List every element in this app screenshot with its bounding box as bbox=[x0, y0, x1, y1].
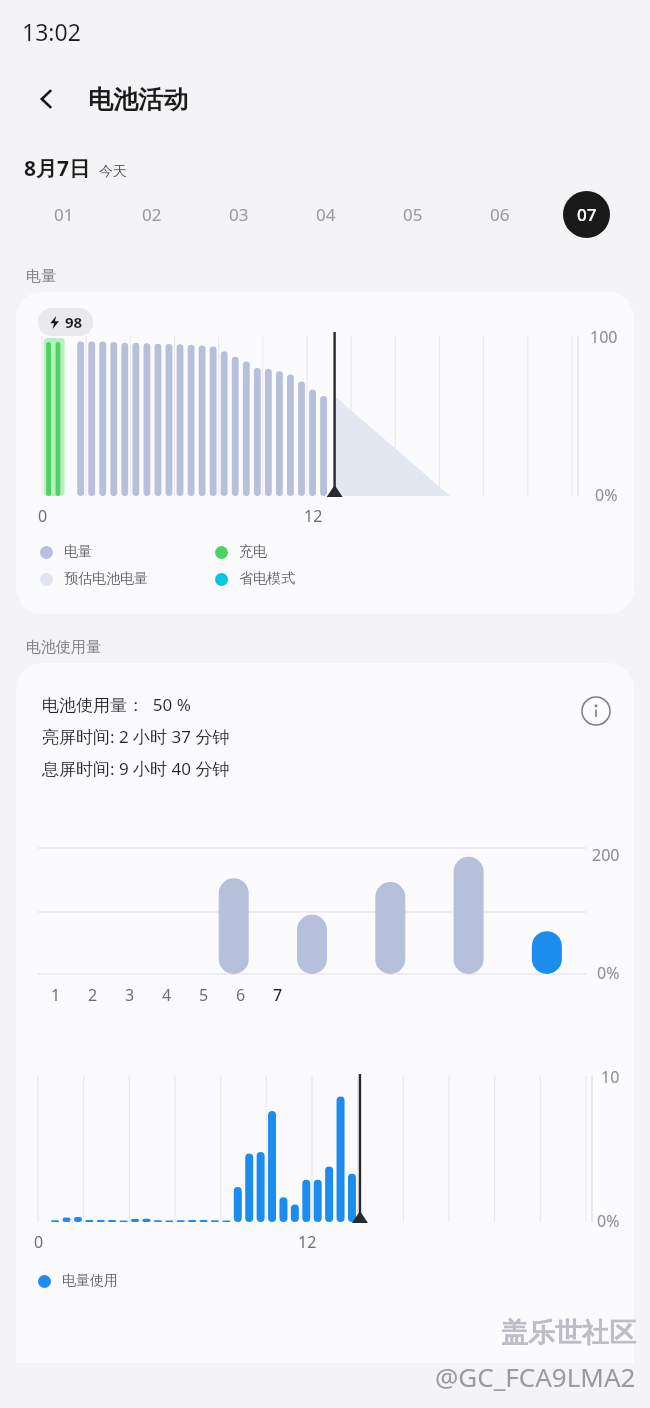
staticText: 8月7日 bbox=[24, 154, 91, 183]
staticText: 13:02 bbox=[22, 16, 81, 47]
staticText: 03 bbox=[229, 203, 249, 226]
staticText: 电量 bbox=[26, 267, 56, 286]
staticText: 06 bbox=[490, 203, 510, 226]
staticText: 200 bbox=[592, 844, 620, 866]
button[interactable]: 省电模式 bbox=[215, 570, 295, 588]
staticText: 12 bbox=[304, 505, 323, 527]
staticText: 息屏时间: 9 小时 40 分钟 bbox=[42, 757, 230, 780]
staticText: 0 bbox=[34, 1231, 44, 1253]
staticText: 4 bbox=[162, 984, 172, 1006]
staticText: 1 bbox=[51, 984, 61, 1006]
staticText: 省电模式 bbox=[239, 570, 295, 588]
staticText: 0% bbox=[597, 1210, 620, 1232]
staticText: 预估电池电量 bbox=[64, 570, 148, 588]
button[interactable]: 电量使用 bbox=[38, 1272, 118, 1290]
button[interactable]: Back bbox=[24, 76, 70, 122]
button[interactable]: 04 bbox=[282, 186, 369, 242]
staticText: 12 bbox=[298, 1231, 317, 1253]
staticText: 0% bbox=[595, 484, 618, 506]
staticText: 0 bbox=[38, 505, 48, 527]
button[interactable]: 06 bbox=[456, 186, 543, 242]
staticText: 01 bbox=[54, 203, 74, 226]
button[interactable]: 02 bbox=[108, 186, 195, 242]
staticText: 电池使用量： 50 % bbox=[42, 693, 191, 716]
staticText: 5 bbox=[199, 984, 209, 1006]
staticText: 亮屏时间: 2 小时 37 分钟 bbox=[42, 725, 230, 748]
button[interactable]: Info bbox=[578, 693, 614, 729]
staticText: 7 bbox=[273, 984, 283, 1006]
staticText: 电量 bbox=[64, 543, 92, 561]
staticText: 今天 bbox=[99, 163, 127, 181]
button[interactable]: 05 bbox=[369, 186, 456, 242]
staticText: 0% bbox=[597, 962, 620, 984]
button[interactable]: 预估电池电量 bbox=[40, 570, 215, 588]
staticText: 电量使用 bbox=[62, 1272, 118, 1290]
staticText: 3 bbox=[125, 984, 135, 1006]
staticText: 电池使用量 bbox=[26, 638, 101, 657]
staticText: 盖乐世社区 bbox=[501, 1316, 636, 1350]
button[interactable]: 100 bbox=[16, 292, 634, 614]
staticText: 6 bbox=[236, 984, 246, 1006]
staticText: @GC_FCA9LMA2 bbox=[435, 1359, 636, 1394]
staticText: 98 bbox=[65, 312, 83, 332]
button[interactable]: 电量 bbox=[40, 543, 215, 561]
staticText: 07 bbox=[577, 203, 597, 226]
staticText: 10 bbox=[601, 1066, 620, 1088]
staticText: 05 bbox=[403, 203, 423, 226]
staticText: 2 bbox=[88, 984, 98, 1006]
staticText: 充电 bbox=[239, 543, 267, 561]
button[interactable]: 充电 bbox=[215, 543, 267, 561]
button[interactable]: 07 bbox=[543, 186, 630, 242]
staticText: 04 bbox=[316, 203, 336, 226]
button[interactable]: 01 bbox=[20, 186, 108, 242]
staticText: 电池活动 bbox=[88, 84, 188, 115]
staticText: 02 bbox=[142, 203, 162, 226]
staticText: 100 bbox=[590, 326, 618, 348]
button[interactable]: 03 bbox=[195, 186, 282, 242]
